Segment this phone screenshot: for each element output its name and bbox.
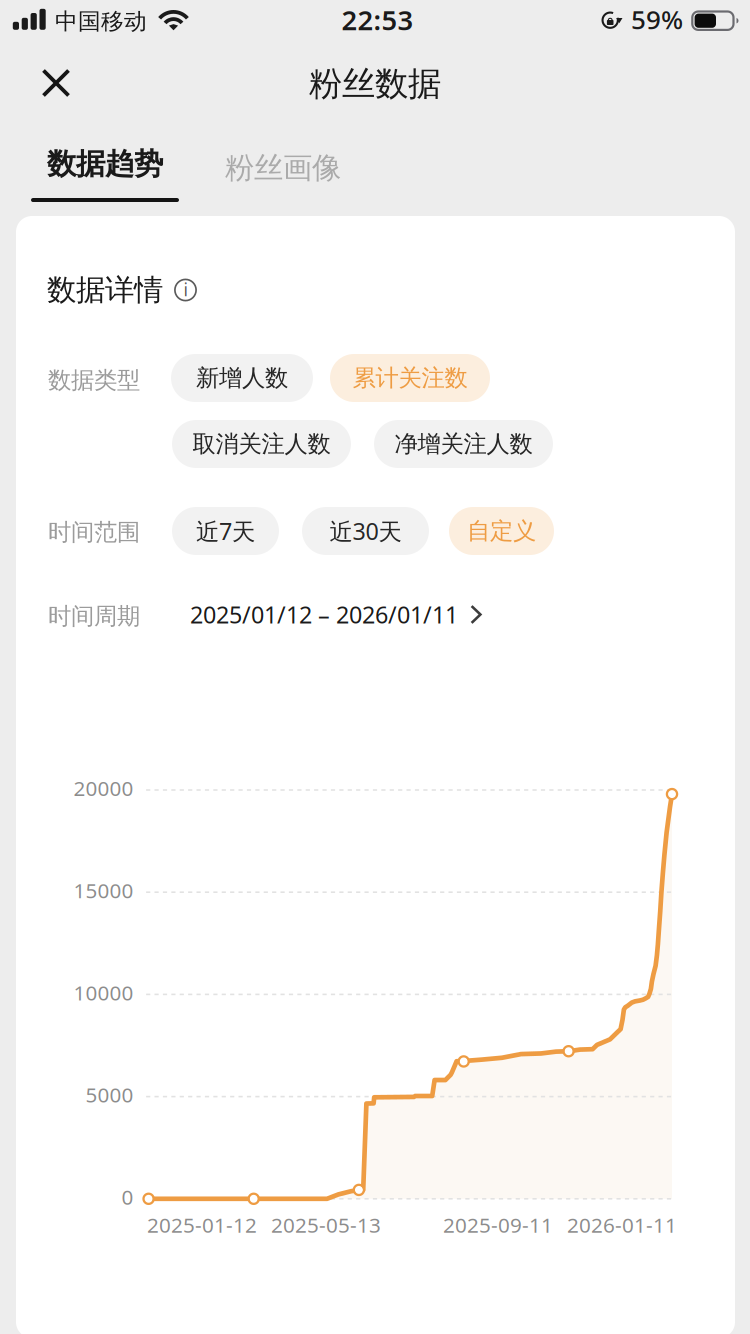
staticText: i — [183, 278, 187, 301]
staticText: 取消关注人数 — [192, 430, 330, 458]
staticText: 2025-05-13 — [271, 1211, 381, 1238]
staticText: 59% — [631, 2, 683, 36]
button[interactable]: Close — [27, 54, 85, 112]
staticText: 近30天 — [329, 515, 401, 546]
button[interactable]: 近7天 — [172, 507, 279, 555]
staticText: 数据详情 — [47, 272, 163, 308]
staticText: 累计关注数 — [352, 364, 467, 392]
staticText: 新增人数 — [196, 364, 288, 392]
button[interactable]: 净增关注人数 — [374, 420, 553, 468]
staticText: 粉丝数据 — [309, 63, 441, 104]
staticText: 10000 — [73, 979, 133, 1006]
button[interactable]: 2025/01/12 – 2026/01/11 — [190, 599, 482, 630]
button[interactable]: About this data — [174, 278, 197, 301]
staticText: 2026-01-11 — [567, 1211, 677, 1238]
staticText: 自定义 — [467, 517, 536, 545]
button[interactable]: 新增人数 — [171, 354, 313, 402]
staticText: 数据类型 — [48, 366, 140, 395]
staticText: 22:53 — [341, 1, 413, 38]
staticText: 时间周期 — [48, 602, 140, 631]
staticText: 近7天 — [196, 515, 255, 546]
staticText: 2025-01-12 — [147, 1211, 257, 1238]
staticText: 15000 — [73, 876, 133, 904]
staticText: 时间范围 — [48, 518, 140, 547]
button[interactable]: 数据趋势 — [31, 146, 179, 202]
staticText: 2025-09-11 — [443, 1211, 553, 1238]
staticText: 净增关注人数 — [394, 430, 532, 458]
button[interactable]: 取消关注人数 — [172, 420, 351, 468]
staticText: 20000 — [73, 774, 133, 802]
button[interactable]: 累计关注数 — [330, 354, 490, 402]
staticText: 粉丝画像 — [225, 150, 341, 186]
staticText: 5000 — [85, 1081, 133, 1108]
button[interactable]: 自定义 — [449, 507, 554, 555]
button[interactable]: 近30天 — [302, 507, 429, 555]
staticText: 数据趋势 — [47, 146, 163, 182]
staticText: 中国移动 — [55, 7, 147, 35]
button[interactable]: 粉丝画像 — [209, 143, 357, 193]
staticText: 0 — [121, 1183, 133, 1210]
staticText: 2025/01/12 – 2026/01/11 — [190, 599, 458, 630]
